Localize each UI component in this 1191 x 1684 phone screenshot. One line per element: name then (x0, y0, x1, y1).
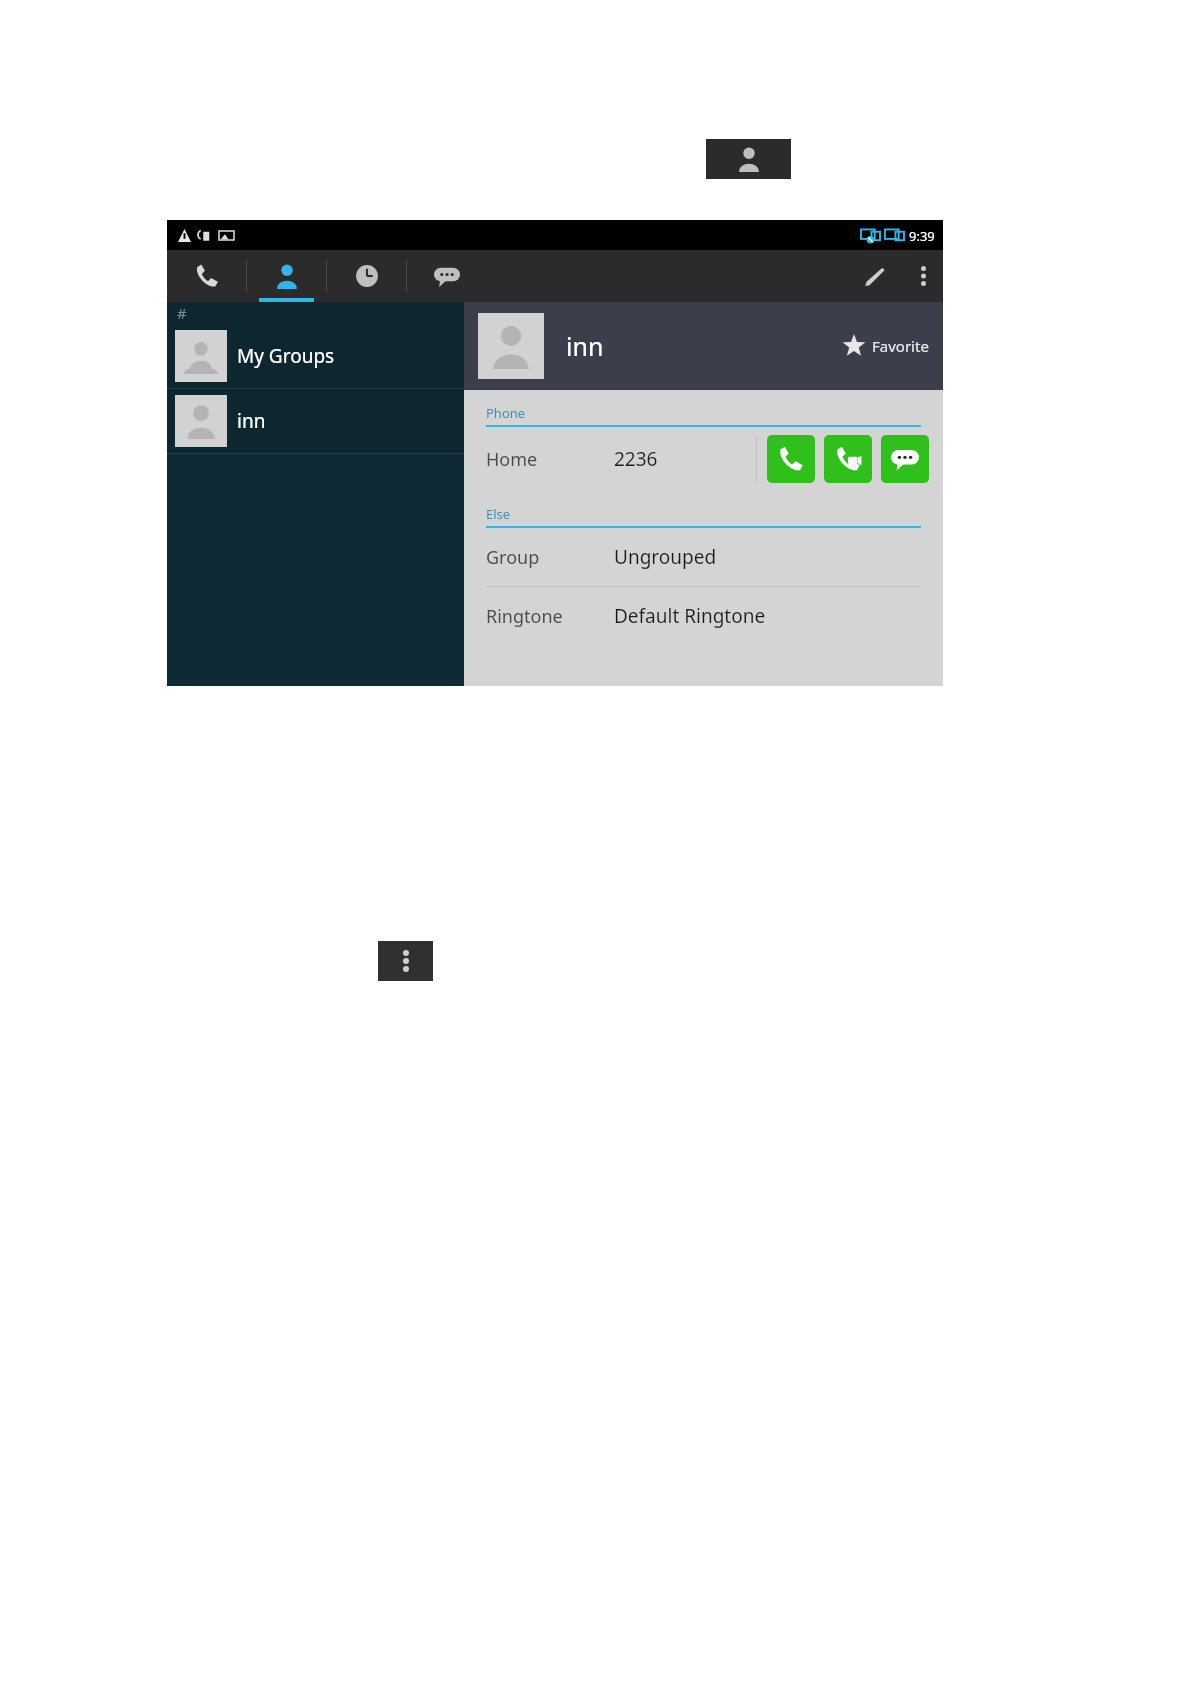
staticText: Phone (486, 404, 526, 422)
button[interactable]: Group (464, 528, 943, 586)
button[interactable]: Contacts tab (247, 250, 326, 302)
staticText: 9:39 (909, 227, 935, 245)
button[interactable]: Video call (824, 435, 872, 483)
other: Contacts icon (706, 139, 791, 179)
staticText: # (177, 303, 187, 323)
button[interactable]: My Groups (167, 324, 464, 388)
button[interactable]: inn (167, 389, 464, 453)
staticText: Ungrouped (614, 544, 717, 570)
button[interactable]: Home (464, 427, 943, 491)
button[interactable]: Favorite (842, 334, 943, 358)
staticText: Ringtone (486, 604, 614, 629)
button[interactable]: Ringtone (464, 587, 943, 645)
other: More options (378, 941, 433, 981)
staticText: Favorite (872, 336, 929, 356)
staticText: Default Ringtone (614, 603, 766, 629)
staticText: Else (486, 505, 511, 523)
staticText: 2236 (614, 446, 658, 472)
staticText: Home (486, 447, 614, 472)
staticText: My Groups (237, 343, 335, 369)
button[interactable]: Tab (167, 250, 246, 302)
staticText: inn (237, 408, 266, 434)
button[interactable]: Tab (327, 250, 406, 302)
button[interactable]: Call (767, 435, 815, 483)
staticText: inn (566, 329, 604, 363)
button[interactable]: Tab (407, 250, 486, 302)
button[interactable]: Message (881, 435, 929, 483)
button[interactable]: More options (903, 250, 943, 302)
staticText: Group (486, 545, 614, 570)
button[interactable]: Edit (845, 250, 903, 302)
